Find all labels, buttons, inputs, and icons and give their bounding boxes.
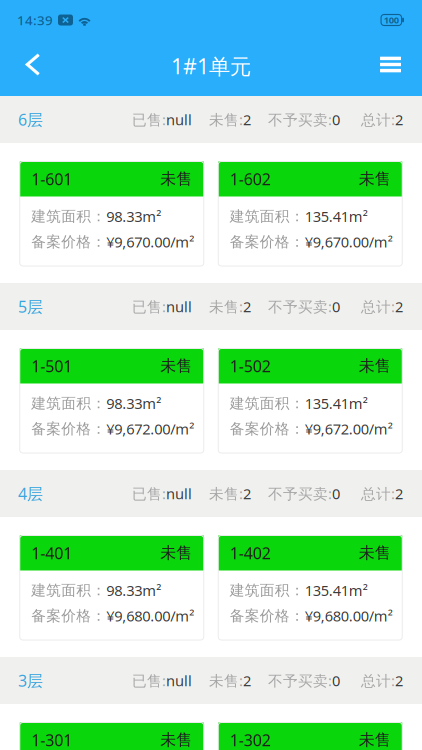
staticText: 未售 xyxy=(359,543,391,563)
staticText: 98.33m² xyxy=(106,393,161,413)
staticText: 备案价格： xyxy=(31,607,106,625)
staticText: 98.33m² xyxy=(106,206,161,226)
staticText: null xyxy=(166,110,192,129)
staticText: 已售: xyxy=(132,671,166,690)
staticText: 未售: xyxy=(209,297,243,316)
staticText: 建筑面积： xyxy=(31,394,106,412)
staticText: ¥9,680.00/m² xyxy=(305,606,393,625)
button[interactable]: 1-501 xyxy=(20,348,204,453)
staticText: 6层 xyxy=(18,109,43,130)
staticText: 建筑面积： xyxy=(31,581,106,599)
staticText: 建筑面积： xyxy=(31,207,106,225)
staticText: 已售: xyxy=(132,484,166,503)
staticText: 建筑面积： xyxy=(230,394,305,412)
staticText: 备案价格： xyxy=(230,420,305,438)
staticText: 2 xyxy=(395,671,403,690)
staticText: 98.33m² xyxy=(106,580,161,600)
button[interactable]: 1-301 xyxy=(20,722,204,750)
staticText: 2 xyxy=(243,484,251,503)
staticText: 100 xyxy=(384,14,399,26)
staticText: 1-601 xyxy=(31,168,72,190)
staticText: 备案价格： xyxy=(230,233,305,251)
staticText: ¥9,670.00/m² xyxy=(305,232,393,251)
staticText: 未售: xyxy=(209,110,243,129)
button[interactable]: Back xyxy=(13,40,53,96)
staticText: 不予买卖: xyxy=(268,671,332,690)
staticText: null xyxy=(166,671,192,690)
staticText: null xyxy=(166,297,192,316)
staticText: 1-302 xyxy=(230,729,271,750)
staticText: 备案价格： xyxy=(31,420,106,438)
staticText: 未售 xyxy=(359,356,391,376)
staticText: 2 xyxy=(243,671,251,690)
staticText: 2 xyxy=(243,297,251,316)
button[interactable]: Menu xyxy=(370,40,410,96)
staticText: 1-401 xyxy=(31,542,72,564)
staticText: 建筑面积： xyxy=(230,207,305,225)
staticText: 总计: xyxy=(361,110,395,129)
staticText: 未售: xyxy=(209,484,243,503)
staticText: 已售: xyxy=(132,110,166,129)
staticText: 总计: xyxy=(361,484,395,503)
staticText: 不予买卖: xyxy=(268,484,332,503)
staticText: 未售 xyxy=(359,169,391,189)
staticText: 5层 xyxy=(18,296,43,317)
staticText: 不予买卖: xyxy=(268,110,332,129)
staticText: null xyxy=(166,484,192,503)
staticText: ¥9,670.00/m² xyxy=(106,232,194,251)
staticText: 未售: xyxy=(209,671,243,690)
staticText: 未售 xyxy=(160,730,192,750)
staticText: 未售 xyxy=(160,356,192,376)
staticText: 3层 xyxy=(18,670,43,691)
staticText: 不予买卖: xyxy=(268,297,332,316)
staticText: 未售 xyxy=(160,543,192,563)
staticText: 14:39 xyxy=(17,11,53,29)
staticText: 2 xyxy=(395,110,403,129)
staticText: ¥9,672.00/m² xyxy=(305,419,393,438)
staticText: 备案价格： xyxy=(31,233,106,251)
staticText: ¥9,672.00/m² xyxy=(106,419,194,438)
staticText: 135.41m² xyxy=(305,206,368,226)
staticText: 4层 xyxy=(18,483,43,504)
button[interactable]: 1-401 xyxy=(20,535,204,640)
staticText: 未售 xyxy=(160,169,192,189)
staticText: 0 xyxy=(332,110,340,129)
button[interactable]: 1-402 xyxy=(218,535,402,640)
staticText: 1-402 xyxy=(230,542,271,564)
staticText: 1-502 xyxy=(230,355,271,377)
staticText: 2 xyxy=(243,110,251,129)
staticText: 1-602 xyxy=(230,168,271,190)
staticText: 未售 xyxy=(359,730,391,750)
staticText: 0 xyxy=(332,484,340,503)
staticText: 1-501 xyxy=(31,355,72,377)
staticText: 2 xyxy=(395,297,403,316)
staticText: 已售: xyxy=(132,297,166,316)
staticText: 0 xyxy=(332,671,340,690)
staticText: 总计: xyxy=(361,671,395,690)
staticText: 总计: xyxy=(361,297,395,316)
button[interactable]: 1-302 xyxy=(218,722,402,750)
staticText: 2 xyxy=(395,484,403,503)
staticText: 135.41m² xyxy=(305,393,368,413)
staticText: 135.41m² xyxy=(305,580,368,600)
button[interactable]: 1-602 xyxy=(218,161,402,266)
staticText: 建筑面积： xyxy=(230,581,305,599)
staticText: 备案价格： xyxy=(230,607,305,625)
staticText: ¥9,680.00/m² xyxy=(106,606,194,625)
button[interactable]: 1-601 xyxy=(20,161,204,266)
staticText: 1#1单元 xyxy=(171,52,251,80)
button[interactable]: 1-502 xyxy=(218,348,402,453)
staticText: 1-301 xyxy=(31,729,72,750)
staticText: 0 xyxy=(332,297,340,316)
